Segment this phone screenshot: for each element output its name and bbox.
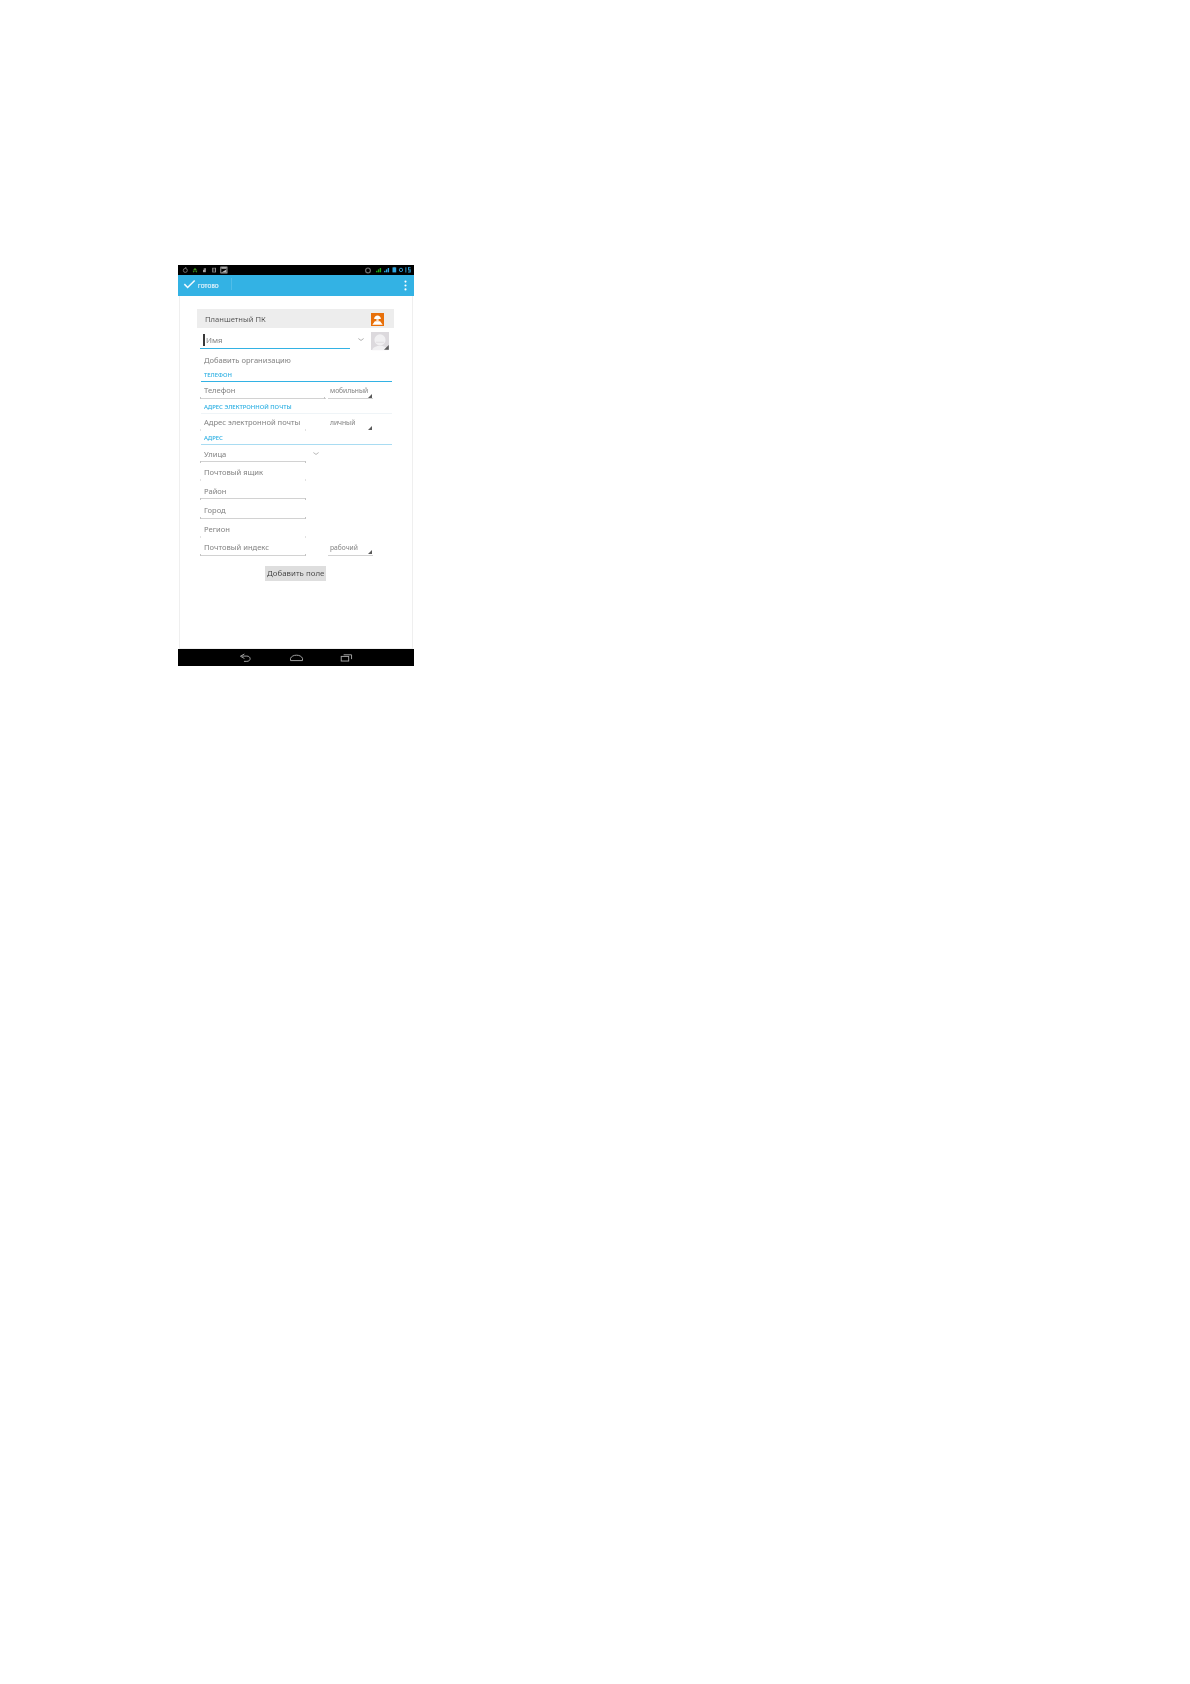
button[interactable]: личный	[328, 415, 373, 431]
staticText: Регион	[204, 524, 230, 534]
button[interactable]: Почтовый индекс	[201, 540, 306, 556]
button[interactable]: Добавить организацию	[201, 353, 351, 367]
staticText: Добавить поле	[267, 568, 325, 579]
staticText: Имя	[206, 335, 223, 345]
staticText: рабочий	[330, 543, 358, 552]
staticText: личный	[330, 418, 356, 427]
staticText: мобильный	[330, 386, 369, 395]
staticText: Город	[204, 505, 226, 515]
button[interactable]: Район	[201, 484, 306, 500]
staticText: ТЕЛЕФОН	[204, 371, 232, 379]
staticText: Адрес электронной почты	[204, 417, 301, 427]
button[interactable]: Регион	[201, 522, 306, 538]
button[interactable]: Улица	[201, 447, 306, 463]
button[interactable]: More options	[396, 275, 414, 296]
staticText: Почтовый ящик	[204, 467, 264, 477]
staticText: Улица	[204, 449, 227, 459]
staticText: АДРЕС	[204, 434, 223, 442]
button[interactable]: Add photo	[371, 332, 389, 350]
staticText: АДРЕС ЭЛЕКТРОННОЙ ПОЧТЫ	[204, 403, 292, 411]
button[interactable]: Добавить поле	[265, 566, 326, 581]
button[interactable]: Почтовый ящик	[201, 465, 306, 481]
button[interactable]: Home	[289, 651, 304, 664]
button[interactable]: Адрес электронной почты	[201, 415, 306, 431]
button[interactable]: Recent apps	[339, 651, 354, 664]
staticText: Добавить организацию	[204, 355, 291, 365]
button[interactable]: мобильный	[328, 383, 373, 399]
staticText: Планшетный ПК	[205, 314, 266, 324]
button[interactable]: ГОТОВО	[178, 275, 234, 296]
staticText: Телефон	[204, 385, 236, 395]
button[interactable]: Back	[238, 651, 253, 664]
button[interactable]: Город	[201, 503, 306, 519]
button[interactable]: Планшетный ПК	[197, 309, 394, 328]
staticText: Почтовый индекс	[204, 542, 269, 552]
button[interactable]: рабочий	[328, 540, 373, 556]
staticText: Район	[204, 486, 227, 496]
button[interactable]: Телефон	[201, 383, 326, 399]
staticText: ГОТОВО	[198, 283, 219, 290]
